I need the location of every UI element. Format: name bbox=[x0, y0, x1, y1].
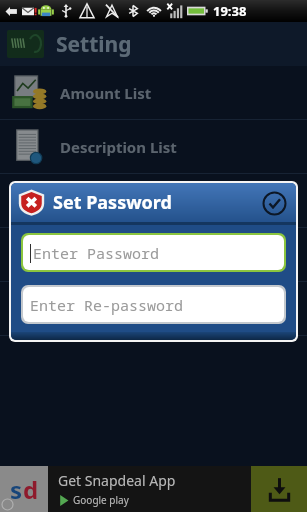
staticText: Setting bbox=[56, 30, 132, 59]
button[interactable]: Amount List bbox=[0, 66, 307, 119]
button[interactable]: Enter Password bbox=[23, 235, 284, 270]
staticText: Get Snapdeal App bbox=[58, 471, 176, 490]
staticText: Google play bbox=[73, 493, 129, 507]
staticText: Enter Re-password bbox=[30, 295, 184, 315]
staticText: 19:38 bbox=[213, 2, 247, 20]
staticText: s bbox=[10, 473, 23, 506]
staticText: Description List bbox=[60, 137, 177, 157]
button[interactable]: Install app bbox=[251, 466, 307, 512]
button[interactable]: Enter Re-password bbox=[23, 287, 284, 322]
staticText: Amount List bbox=[60, 83, 152, 103]
staticText: d bbox=[23, 473, 39, 506]
staticText: Enter Password bbox=[33, 243, 160, 263]
button[interactable]: Description List bbox=[0, 120, 307, 173]
staticText: Set Password bbox=[53, 190, 172, 215]
button[interactable]: Confirm password bbox=[259, 188, 289, 218]
